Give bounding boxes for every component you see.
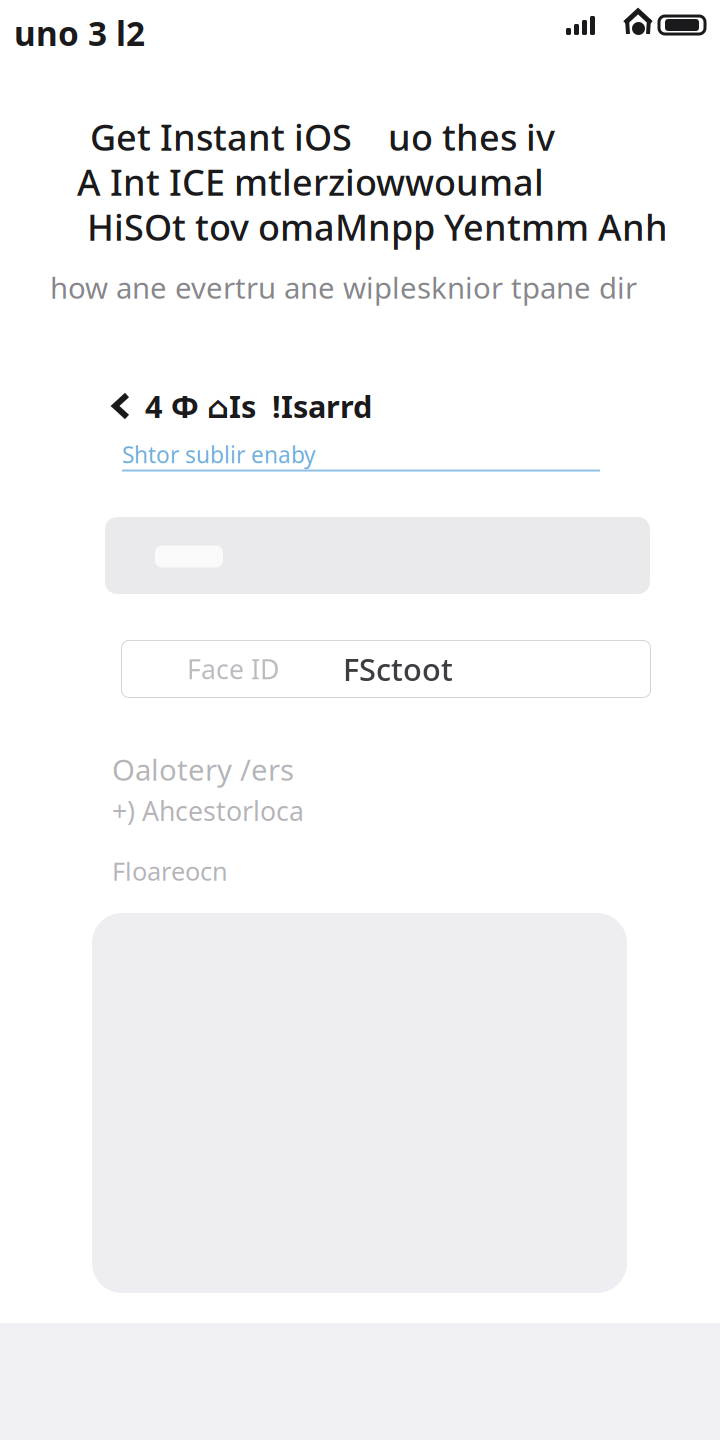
- button[interactable]: First option, selected: [105, 517, 273, 594]
- staticText: +) Ahcestorloca: [112, 793, 304, 828]
- staticText: A Int ICE mtlerziowwoumal: [77, 158, 544, 206]
- staticText: Oalotery /ers: [112, 750, 294, 789]
- staticText: HiSOt tov omaMnpp Yentmm Anh: [87, 203, 668, 251]
- button[interactable]: Face ID: [121, 640, 651, 698]
- staticText: how ane evertru ane wiplesknior tpane di…: [50, 268, 637, 307]
- staticText: FSctoot: [343, 649, 453, 689]
- staticText: 4 Φ ⌂Is !Isarrd: [145, 386, 372, 426]
- button[interactable]: +) Ahcestorloca: [112, 793, 304, 828]
- button[interactable]: Shtor sublir enaby: [122, 441, 600, 470]
- staticText: Shtor sublir enaby: [122, 439, 316, 469]
- button[interactable]: Back: [105, 384, 378, 428]
- staticText: Floareocn: [112, 854, 228, 888]
- staticText: uno 3 l2: [14, 11, 145, 55]
- staticText: Face ID: [187, 651, 279, 687]
- staticText: Get Instant iOS uo thes iv: [90, 113, 555, 161]
